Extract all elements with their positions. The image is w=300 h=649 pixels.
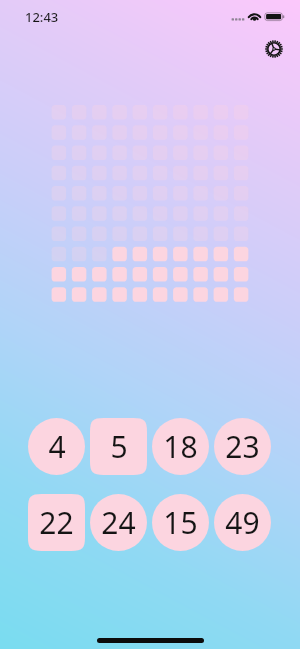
staticText: 5 (110, 426, 128, 467)
button[interactable]: 5 (90, 418, 147, 475)
button[interactable]: 15 (152, 494, 209, 551)
button[interactable]: 23 (214, 418, 271, 475)
staticText: 4 (48, 426, 66, 467)
button[interactable]: 22 (28, 494, 85, 551)
button[interactable]: 18 (152, 418, 209, 475)
button[interactable]: 24 (90, 494, 147, 551)
staticText: 18 (163, 426, 198, 467)
staticText: 12:43 (25, 8, 59, 26)
staticText: 24 (101, 502, 136, 543)
staticText: 22 (39, 502, 74, 543)
staticText: 49 (225, 502, 260, 543)
button[interactable]: Settings (259, 34, 288, 63)
button[interactable]: 4 (28, 418, 85, 475)
button[interactable]: 49 (214, 494, 271, 551)
staticText: 23 (225, 426, 260, 467)
staticText: 15 (163, 502, 198, 543)
